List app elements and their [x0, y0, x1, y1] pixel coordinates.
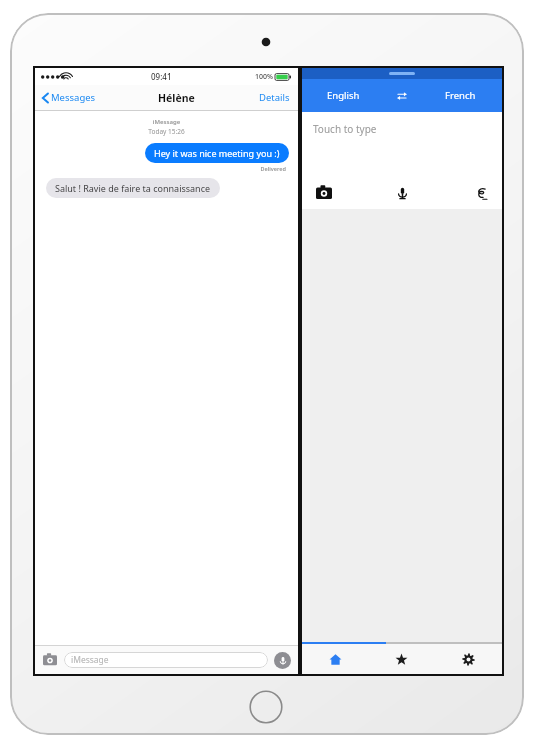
staticText: iMessage	[71, 654, 109, 666]
button[interactable]: Messages	[40, 88, 98, 107]
button[interactable]: Camera translate	[316, 177, 374, 209]
staticText: English	[327, 89, 360, 102]
button[interactable]: Camera	[42, 652, 58, 668]
button[interactable]: Salut ! Ravie de faire ta connaissance	[46, 178, 220, 198]
staticText: Touch to type	[313, 122, 377, 136]
button[interactable]: Settings	[435, 644, 502, 674]
staticText: Today 15:26	[35, 127, 298, 136]
staticText: Delivered	[35, 165, 286, 172]
button[interactable]: Swap languages	[385, 79, 419, 112]
staticText: 09:41	[151, 71, 172, 82]
staticText: iMessage	[35, 118, 298, 126]
staticText: French	[445, 89, 476, 102]
button[interactable]: Saved	[368, 644, 435, 674]
button[interactable]: iMessage	[64, 652, 268, 668]
staticText: Messages	[51, 91, 96, 104]
staticText: Hélène	[158, 91, 195, 105]
staticText: Details	[259, 91, 290, 104]
button[interactable]: Hey it was nice meeting you :)	[145, 143, 289, 163]
button[interactable]: Touch to type	[302, 112, 502, 177]
button[interactable]: Home	[302, 644, 368, 674]
staticText: Hey it was nice meeting you :)	[154, 147, 280, 159]
button[interactable]: English	[302, 79, 385, 112]
button[interactable]: Details	[256, 88, 293, 107]
button[interactable]: Handwriting input	[431, 177, 488, 209]
button[interactable]: Record audio	[274, 652, 291, 669]
staticText: 100%	[255, 72, 273, 82]
button[interactable]: French	[419, 79, 502, 112]
staticText: Salut ! Ravie de faire ta connaissance	[55, 182, 211, 194]
button[interactable]: Voice input	[374, 177, 431, 209]
